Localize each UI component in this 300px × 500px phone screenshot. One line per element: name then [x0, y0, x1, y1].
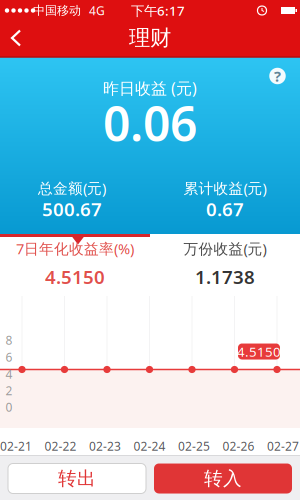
button[interactable]: 转出 [8, 463, 146, 493]
button[interactable]: 帮助 [269, 66, 286, 86]
staticText: 4 [5, 366, 12, 382]
button[interactable]: 转入 [154, 463, 292, 493]
staticText: 转出 [58, 467, 96, 490]
button[interactable]: 7日年化收益率(%) [0, 238, 150, 290]
button[interactable]: 返回 [1, 23, 31, 53]
staticText: 02-22 [44, 438, 76, 454]
staticText: 0 [5, 399, 12, 415]
staticText: 0.06 [103, 91, 197, 155]
staticText: 累计收益(元) [183, 178, 266, 198]
staticText: 转入 [204, 467, 242, 490]
staticText: 2 [5, 382, 12, 398]
staticText: 4.5150 [237, 343, 281, 360]
staticText: 0.67 [206, 197, 244, 221]
staticText: 02-25 [178, 438, 210, 454]
staticText: 02-26 [222, 438, 254, 454]
staticText: 总金额(元) [38, 178, 106, 198]
staticText: 02-24 [133, 438, 165, 454]
staticText: 昨日收益 (元) [103, 77, 197, 99]
staticText: 8 [5, 332, 12, 348]
staticText: 7日年化收益率(%) [16, 239, 134, 258]
staticText: 下午6:17 [131, 2, 185, 19]
staticText: 4G [89, 2, 105, 18]
staticText: 4.5150 [45, 264, 105, 289]
staticText: ? [274, 66, 281, 86]
staticText: 02-27 [267, 438, 299, 454]
staticText: 理财 [129, 25, 171, 51]
staticText: 02-23 [89, 438, 121, 454]
staticText: 1.1738 [195, 264, 255, 289]
button[interactable]: 万份收益(元) [150, 238, 300, 290]
staticText: 中国移动 [33, 3, 81, 18]
staticText: 万份收益(元) [183, 239, 266, 258]
staticText: 02-21 [0, 438, 32, 454]
staticText: 6 [5, 349, 12, 365]
staticText: 500.67 [42, 197, 102, 221]
